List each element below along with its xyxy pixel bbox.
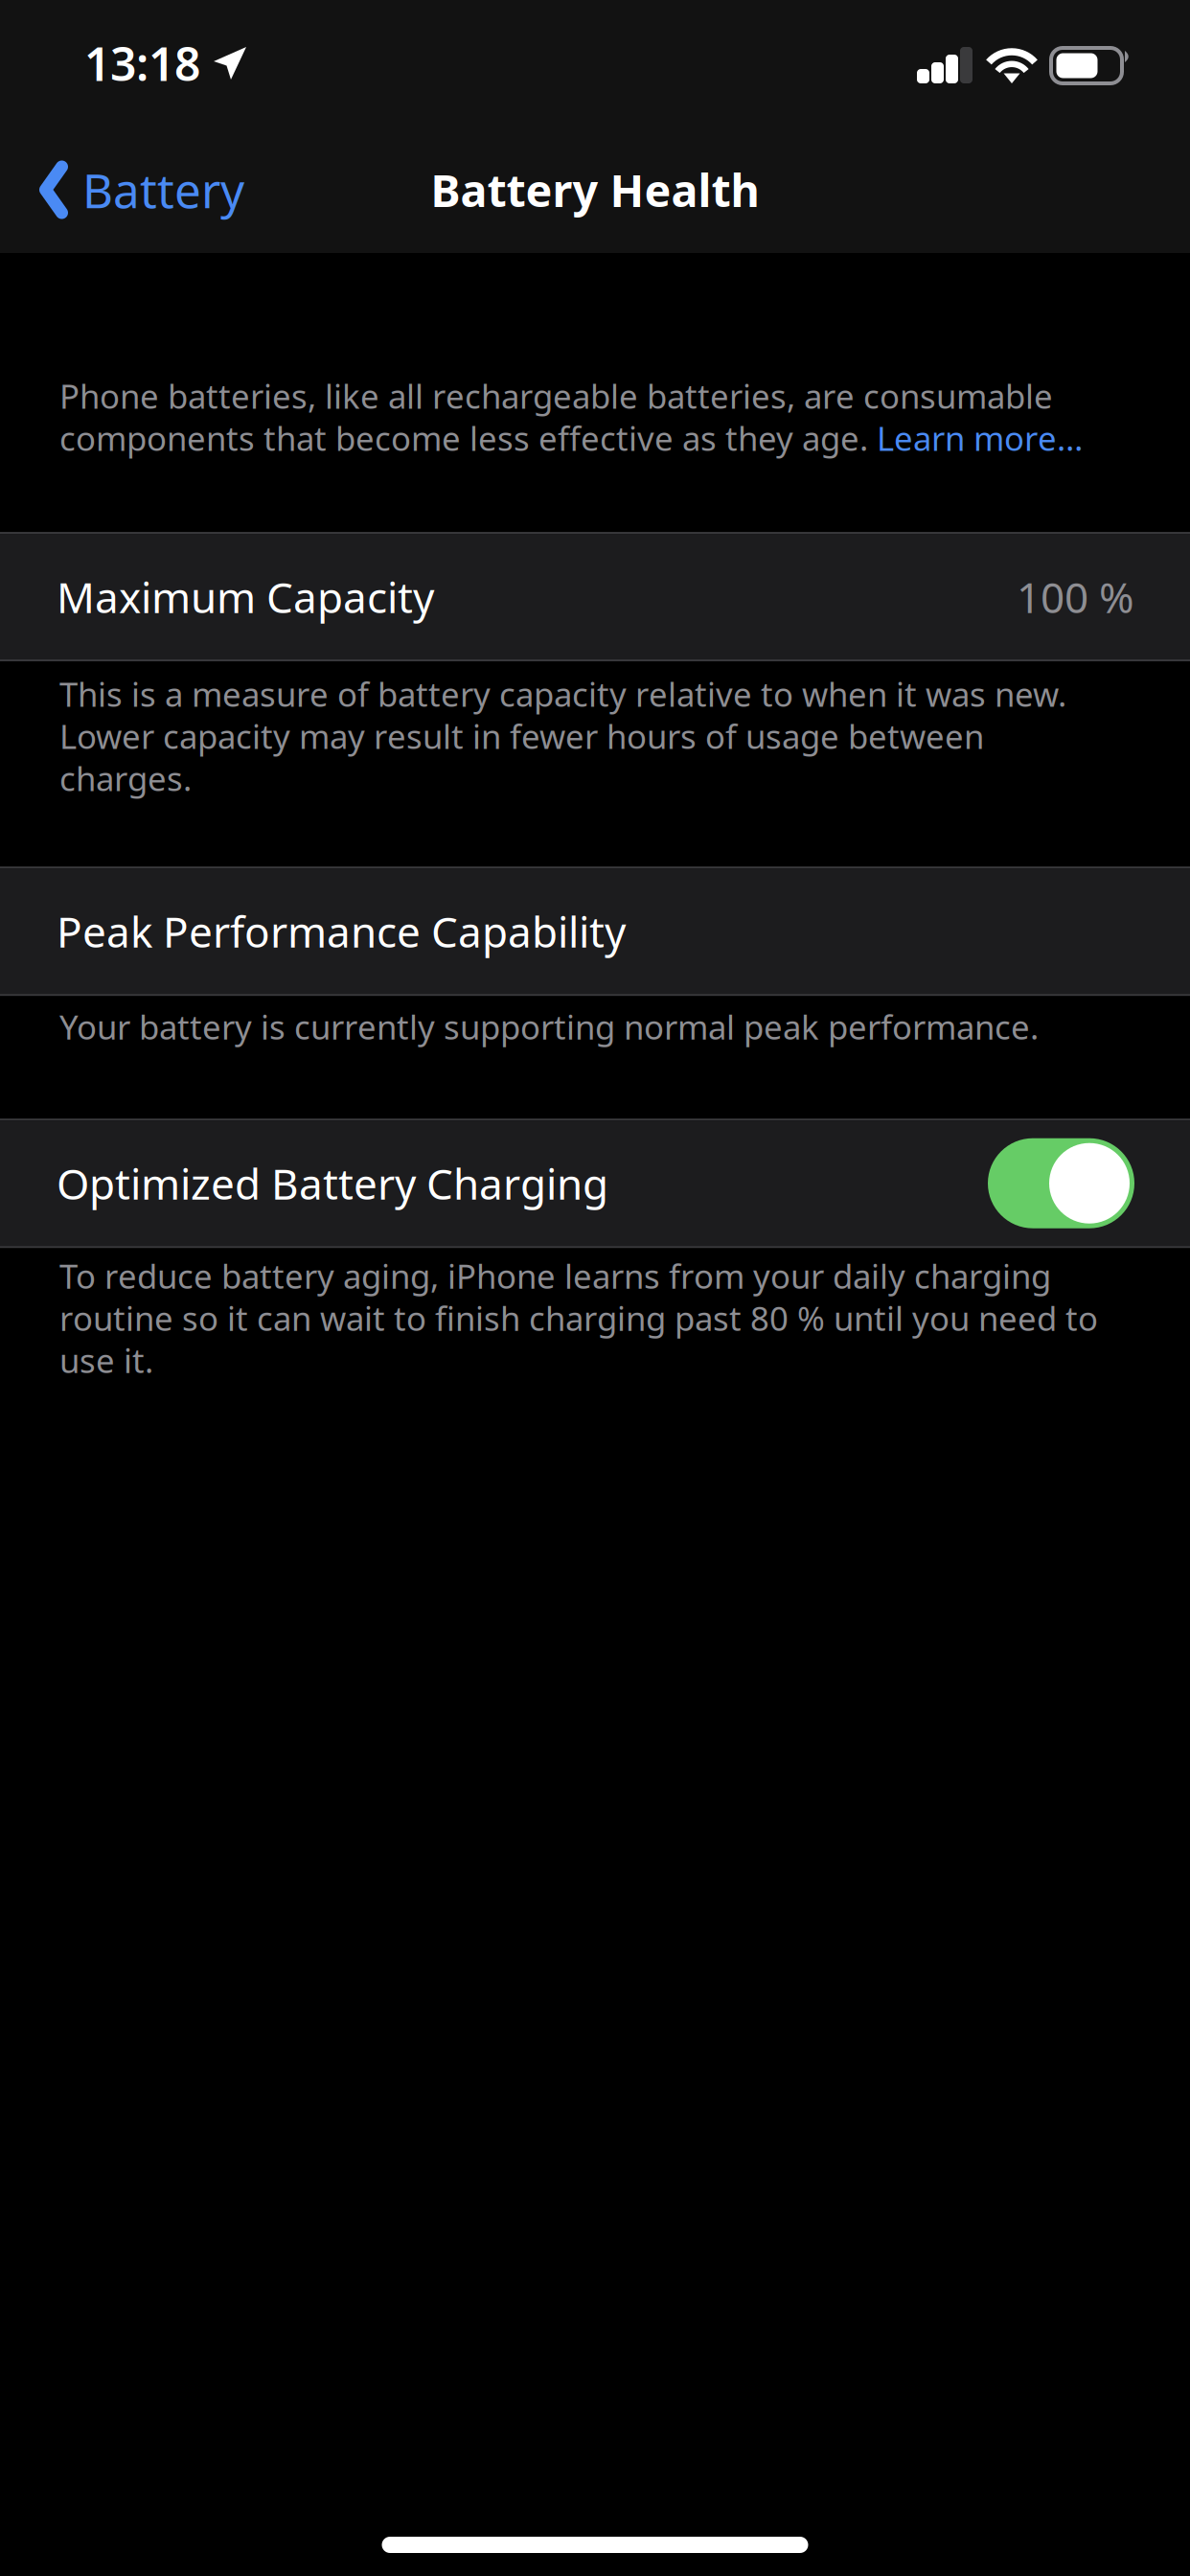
staticText: Your battery is currently supporting nor…	[59, 1005, 1039, 1049]
staticText: Maximum Capacity	[57, 569, 434, 625]
staticText: 13:18	[84, 33, 200, 94]
button[interactable]: Optimized Battery Charging	[988, 1138, 1134, 1228]
staticText: Phone batteries, like all rechargeable b…	[59, 374, 1083, 460]
staticText: Peak Performance Capability	[57, 903, 626, 959]
staticText: Optimized Battery Charging	[57, 1155, 608, 1211]
staticText: To reduce battery aging, iPhone learns f…	[59, 1254, 1098, 1382]
staticText: Battery	[82, 158, 244, 221]
staticText: Battery Health	[431, 160, 759, 219]
staticText: This is a measure of battery capacity re…	[59, 672, 1066, 800]
staticText: 100 %	[1017, 569, 1134, 625]
button[interactable]: Battery	[0, 126, 269, 253]
